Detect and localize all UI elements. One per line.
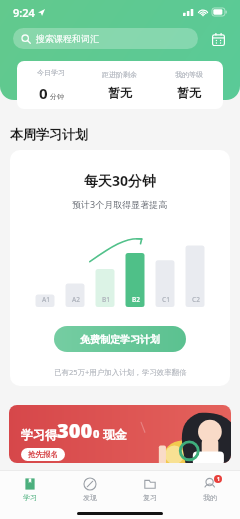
staticText: B1 <box>102 295 110 304</box>
button[interactable]: 学习得 <box>9 405 231 463</box>
staticText: 300 <box>57 417 93 444</box>
button[interactable]: 今日学习 <box>17 61 85 109</box>
staticText: C1 <box>162 295 170 304</box>
staticText: 距进阶剩余 <box>102 70 137 79</box>
button[interactable]: 免费制定学习计划 <box>54 326 186 352</box>
button[interactable]: 学习 <box>0 471 60 507</box>
staticText: 搜索课程和词汇 <box>36 33 99 44</box>
staticText: 复习 <box>143 493 157 502</box>
staticText: 学习得 <box>21 427 57 442</box>
button[interactable]: 搜索课程和词汇 <box>13 28 198 49</box>
staticText: 现金 <box>103 427 127 442</box>
staticText: 暂无 <box>177 85 201 100</box>
staticText: 我的等级 <box>175 70 203 79</box>
button[interactable]: 发现 <box>60 471 120 507</box>
staticText: 每天30分钟 <box>84 171 157 190</box>
staticText: 抢先报名 <box>28 450 58 459</box>
button[interactable]: 距进阶剩余 <box>85 61 154 109</box>
staticText: 0 <box>93 426 100 441</box>
staticText: B2 <box>132 295 140 304</box>
staticText: 预计3个月取得显著提高 <box>72 198 168 210</box>
staticText: 暂无 <box>108 85 132 100</box>
staticText: 我的 <box>203 493 217 502</box>
button[interactable]: 1 <box>180 471 240 507</box>
staticText: 已有25万+用户加入计划，学习效率翻倍 <box>54 367 187 377</box>
button[interactable]: 我的等级 <box>154 61 223 109</box>
button[interactable]: 复习 <box>120 471 180 507</box>
staticText: 1 <box>217 476 220 483</box>
staticText: 分钟 <box>50 92 64 101</box>
staticText: 9:24 <box>13 5 35 20</box>
staticText: 免费制定学习计划 <box>80 333 160 346</box>
staticText: 本周学习计划 <box>10 126 88 142</box>
staticText: 0 <box>39 83 48 103</box>
staticText: C2 <box>192 295 200 304</box>
button[interactable]: 抢先报名 <box>21 448 65 461</box>
staticText: 学习 <box>23 493 37 502</box>
staticText: A1 <box>42 295 50 304</box>
button[interactable]: 日历 <box>207 28 229 50</box>
staticText: A2 <box>72 295 80 304</box>
staticText: 发现 <box>83 493 97 502</box>
staticText: 今日学习 <box>37 68 65 77</box>
